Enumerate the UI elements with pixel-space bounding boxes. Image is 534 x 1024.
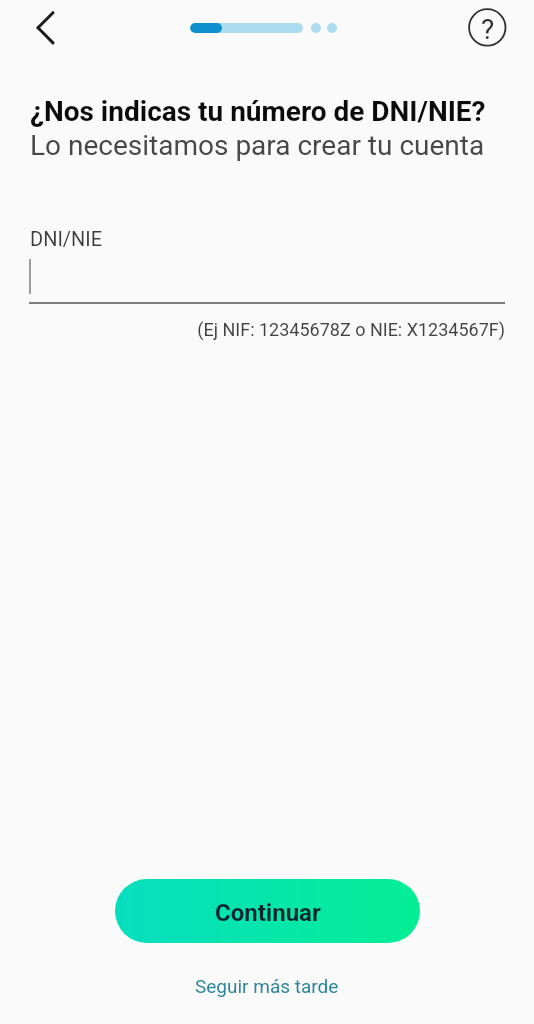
staticText: ¿Nos indicas tu número de DNI/NIE? — [30, 95, 486, 128]
button[interactable]: Continuar — [115, 879, 420, 943]
button[interactable] — [29, 255, 505, 305]
staticText: (Ej NIF: 12345678Z o NIE: X1234567F) — [0, 319, 505, 340]
staticText: ? — [481, 13, 495, 46]
button[interactable]: Seguir más tarde — [177, 967, 357, 1005]
staticText: Continuar — [215, 899, 321, 927]
staticText: Seguir más tarde — [195, 975, 339, 997]
button[interactable]: Help — [463, 3, 511, 51]
button[interactable]: Back — [18, 4, 66, 52]
staticText: DNI/NIE — [30, 227, 103, 250]
staticText: Lo necesitamos para crear tu cuenta — [30, 129, 485, 162]
